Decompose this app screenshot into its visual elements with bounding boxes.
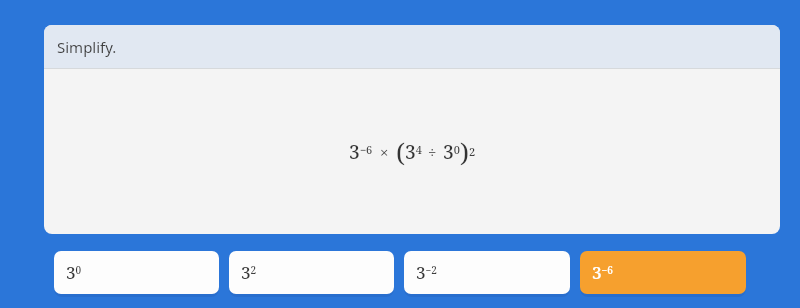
staticText: ) (460, 134, 469, 169)
button[interactable]: 30 (54, 251, 219, 294)
staticText: 3−2 (416, 261, 437, 284)
staticText: 34 (405, 139, 422, 165)
staticText: 30 (66, 261, 82, 284)
button[interactable]: 3−6 (580, 251, 746, 294)
staticText: 3−6 (592, 261, 613, 284)
staticText: ( (396, 134, 405, 169)
staticText: Simplify. (57, 37, 117, 57)
staticText: 2 (469, 144, 476, 159)
staticText: ÷ (428, 142, 437, 162)
button[interactable]: 32 (229, 251, 394, 294)
staticText: 32 (241, 261, 257, 284)
button[interactable]: 3−2 (404, 251, 570, 294)
staticText: × (380, 142, 389, 162)
staticText: 3−6 (349, 139, 373, 165)
staticText: 30 (443, 139, 460, 165)
